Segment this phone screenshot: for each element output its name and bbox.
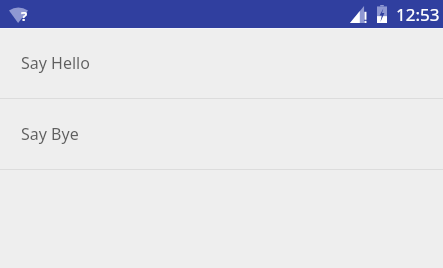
staticText: ?	[21, 7, 28, 23]
other: Wi-Fi, no internet	[9, 7, 28, 23]
other: Mobile signal, no data	[350, 6, 368, 23]
button[interactable]: Say Bye	[0, 99, 443, 169]
button[interactable]: Say Hello	[0, 28, 443, 98]
staticText: Say Bye	[21, 123, 79, 145]
staticText: Say Hello	[21, 52, 90, 74]
staticText: 12:53	[396, 3, 440, 26]
other: Battery charging	[377, 5, 387, 23]
